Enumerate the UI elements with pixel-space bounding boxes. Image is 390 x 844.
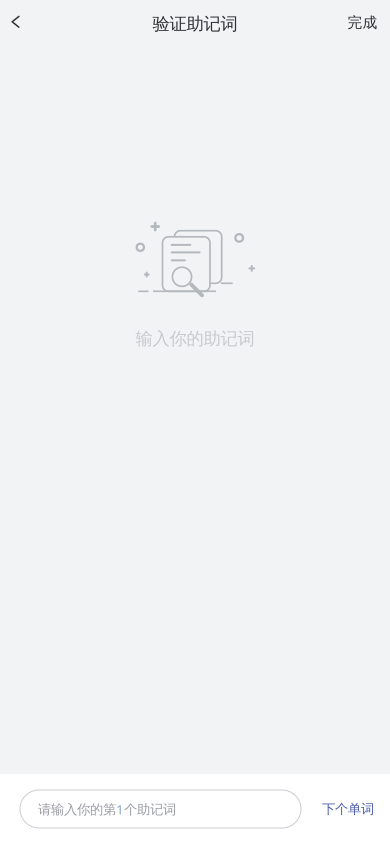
button[interactable]: 完成 [347,0,390,46]
button[interactable]: 返回 [0,0,31,46]
button[interactable]: 下个单词 [322,789,390,829]
staticText: 验证助记词 [152,13,237,35]
button[interactable]: 请输入你的第1个助记词 [0,790,301,828]
staticText: 请输入你的第1个助记词 [38,800,176,818]
staticText: 输入你的助记词 [135,328,254,349]
staticText: 完成 [347,13,377,31]
staticText: 下个单词 [322,801,374,817]
